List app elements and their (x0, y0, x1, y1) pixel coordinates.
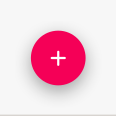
button[interactable]: Add (31, 31, 86, 85)
